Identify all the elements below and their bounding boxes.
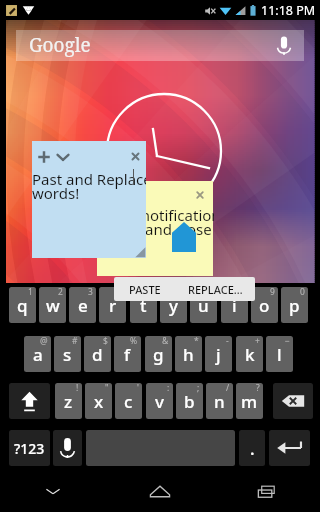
button[interactable]: Add note	[36, 149, 52, 165]
staticText: when notification opens and close notes!	[98, 205, 214, 253]
staticText: $	[103, 336, 108, 347]
staticText: r	[109, 294, 117, 317]
staticText: b	[184, 390, 195, 413]
staticText: #	[72, 336, 78, 347]
staticText: p	[289, 294, 300, 317]
button[interactable]: x	[85, 383, 112, 419]
staticText: %	[130, 336, 138, 347]
staticText: PASTE	[129, 282, 161, 297]
button[interactable]: y	[160, 287, 187, 323]
button[interactable]: v	[146, 383, 173, 419]
staticText: f	[124, 343, 131, 366]
button[interactable]: j	[205, 336, 232, 372]
staticText: 1	[28, 287, 33, 298]
staticText: w	[46, 294, 60, 317]
staticText: x	[94, 390, 104, 413]
staticText: u	[198, 294, 209, 317]
button[interactable]: Close note	[128, 149, 143, 164]
staticText: z	[64, 390, 73, 413]
staticText: c	[124, 390, 133, 413]
button[interactable]: Voice search	[264, 30, 304, 61]
staticText: :	[167, 383, 170, 394]
staticText: !	[76, 383, 79, 394]
staticText: q	[17, 294, 28, 317]
button[interactable]: r	[99, 287, 126, 323]
button[interactable]: i	[221, 287, 248, 323]
staticText: REPLACE…	[188, 282, 243, 297]
button[interactable]: m	[236, 383, 263, 419]
button[interactable]: f	[114, 336, 141, 372]
button[interactable]: Close note	[97, 181, 213, 276]
button[interactable]: Shift	[9, 383, 50, 419]
button[interactable]: .	[239, 430, 265, 466]
staticText: 2	[58, 287, 63, 298]
button[interactable]: w	[39, 287, 66, 323]
staticText: l	[277, 343, 282, 366]
button[interactable]: d	[84, 336, 111, 372]
staticText: o	[259, 294, 270, 317]
staticText: i	[232, 294, 237, 317]
staticText: n	[214, 390, 225, 413]
button[interactable]: Home	[106, 469, 213, 512]
staticText: *	[194, 336, 199, 347]
staticText: j	[216, 343, 221, 366]
staticText: k	[245, 343, 255, 366]
staticText: &	[162, 336, 169, 347]
button[interactable]: a	[24, 336, 51, 372]
staticText: 3	[88, 287, 93, 298]
button[interactable]: Hide keyboard	[0, 469, 106, 512]
button[interactable]: Add note	[32, 141, 146, 258]
staticText: ?	[256, 383, 260, 394]
button[interactable]: Google	[16, 30, 304, 61]
staticText: .	[250, 437, 255, 460]
button[interactable]: l	[266, 336, 293, 372]
button[interactable]: z	[55, 383, 82, 419]
button[interactable]: ?123	[9, 430, 50, 466]
button[interactable]: g	[145, 336, 172, 372]
button[interactable]: Expand note	[55, 149, 71, 165]
staticText: ;	[197, 383, 200, 394]
button[interactable]: Voice input	[53, 430, 82, 466]
staticText: −	[285, 336, 290, 347]
button[interactable]: k	[236, 336, 263, 372]
staticText: g	[153, 343, 164, 366]
staticText: 11:18 PM	[261, 2, 316, 19]
button[interactable]: t	[130, 287, 157, 323]
staticText: @	[40, 336, 48, 347]
button[interactable]: Enter	[269, 430, 310, 466]
staticText: "	[105, 383, 109, 394]
staticText: '	[137, 383, 139, 394]
staticText: v	[155, 390, 164, 413]
staticText: Google	[29, 32, 91, 58]
button[interactable]: h	[175, 336, 202, 372]
staticText: /	[226, 383, 230, 394]
staticText: -	[226, 336, 229, 347]
button[interactable]: REPLACE…	[176, 277, 255, 301]
staticText: t	[140, 294, 147, 317]
button[interactable]: PASTE	[114, 277, 176, 301]
staticText: h	[183, 343, 194, 366]
button[interactable]: o	[251, 287, 278, 323]
button[interactable]: b	[176, 383, 203, 419]
staticText: Past and Replace words!	[32, 169, 146, 203]
button[interactable]: Recent apps	[213, 469, 320, 512]
staticText: a	[33, 343, 43, 366]
button[interactable]: e	[69, 287, 96, 323]
button[interactable]: u	[190, 287, 217, 323]
button[interactable]: p	[281, 287, 308, 323]
staticText: y	[169, 294, 178, 317]
staticText: 7	[209, 287, 214, 298]
staticText: 5	[149, 287, 154, 298]
button[interactable]: s	[54, 336, 81, 372]
staticText: m	[241, 390, 258, 413]
staticText: 8	[240, 287, 245, 298]
button[interactable]: q	[9, 287, 36, 323]
button[interactable]: c	[115, 383, 142, 419]
button[interactable]: n	[206, 383, 233, 419]
button[interactable]: Close note	[193, 188, 207, 202]
button[interactable]: Backspace	[273, 383, 313, 419]
staticText: +	[255, 336, 260, 347]
